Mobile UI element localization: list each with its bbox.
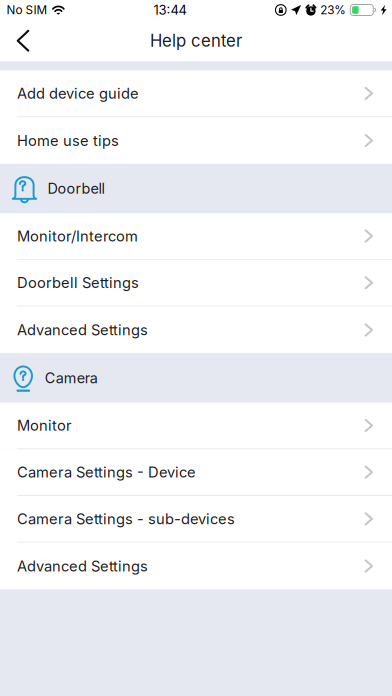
button[interactable]: Back — [0, 20, 46, 61]
staticText: Add device guide — [17, 84, 139, 102]
button[interactable]: Advanced Settings — [0, 543, 392, 589]
staticText: Monitor/Intercom — [17, 227, 138, 245]
staticText: Camera Settings - Device — [17, 463, 196, 481]
button[interactable]: Camera Settings - Device — [0, 449, 392, 496]
staticText: Monitor — [17, 417, 72, 434]
staticText: Advanced Settings — [17, 321, 148, 339]
button[interactable]: Home use tips — [0, 117, 392, 164]
staticText: Help center — [150, 31, 242, 51]
staticText: Camera — [45, 369, 98, 387]
button[interactable]: Add device guide — [0, 70, 392, 117]
staticText: 23% — [320, 3, 346, 17]
button[interactable]: Monitor/Intercom — [0, 213, 392, 260]
staticText: Doorbell Settings — [17, 274, 139, 292]
button[interactable]: Camera Settings - sub-devices — [0, 496, 392, 543]
staticText: Camera Settings - sub-devices — [17, 510, 235, 528]
staticText: Home use tips — [17, 132, 119, 149]
button[interactable]: Advanced Settings — [0, 307, 392, 353]
staticText: 13:44 — [153, 2, 186, 18]
button[interactable]: Monitor — [0, 403, 392, 449]
staticText: Advanced Settings — [17, 557, 148, 575]
staticText: No SIM — [6, 3, 47, 17]
button[interactable]: Doorbell Settings — [0, 260, 392, 307]
staticText: Doorbell — [47, 180, 104, 197]
